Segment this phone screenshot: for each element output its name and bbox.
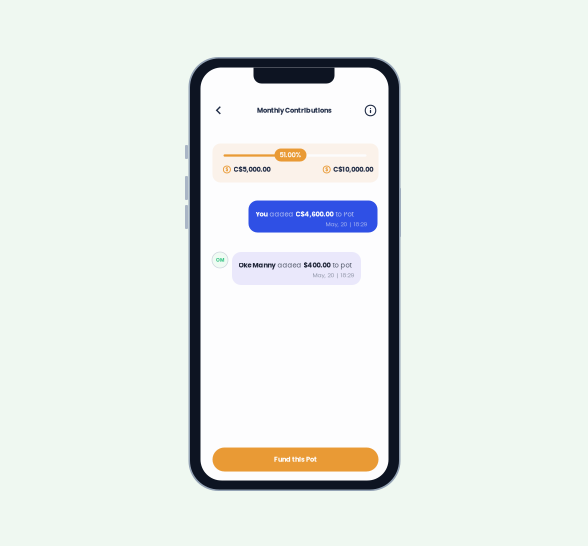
button[interactable]: Fund this Pot: [212, 447, 378, 471]
staticText: to Pot: [333, 209, 353, 219]
staticText: $400.00: [303, 260, 330, 270]
staticText: May, 20 | 18:29: [312, 271, 354, 279]
staticText: C$5,000.00: [233, 165, 270, 174]
staticText: to pot: [330, 260, 351, 270]
staticText: $: [225, 166, 228, 173]
staticText: May, 20 | 18:29: [325, 220, 367, 228]
staticText: added: [267, 209, 295, 219]
staticText: added: [275, 260, 303, 270]
staticText: Monthly Contributions: [257, 106, 332, 115]
staticText: C$4,600.00: [295, 209, 333, 219]
staticText: C$10,000.00: [333, 165, 373, 174]
button[interactable]: Back: [209, 100, 227, 120]
button[interactable]: Information: [361, 100, 379, 120]
staticText: OM: [216, 257, 224, 263]
staticText: 51.00%: [279, 150, 301, 160]
staticText: $: [325, 166, 328, 173]
staticText: Oke Manny: [238, 260, 275, 270]
staticText: Fund this Pot: [274, 455, 317, 464]
staticText: You: [255, 209, 267, 219]
